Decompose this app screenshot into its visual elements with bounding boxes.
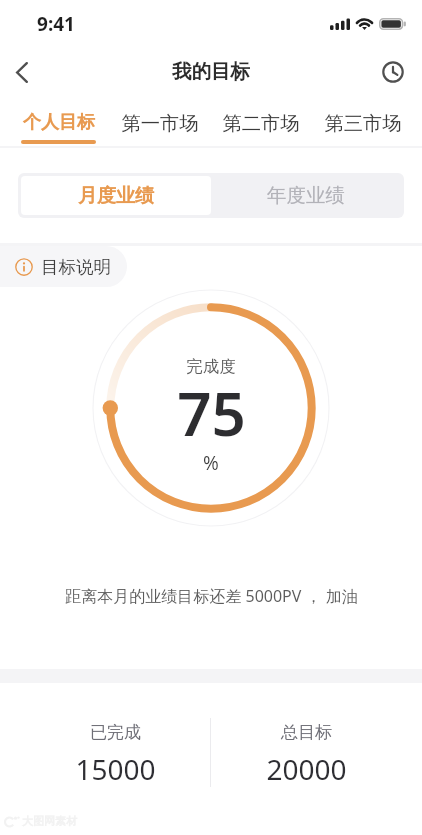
staticText: 年度业绩 [267,183,345,208]
button[interactable]: 目标说明 [0,246,127,287]
staticText: 75 [177,372,246,454]
button[interactable]: 第三市场 [312,99,414,146]
staticText: 月度业绩 [78,184,154,208]
staticText: 第一市场 [121,111,199,135]
button[interactable]: History [371,50,415,94]
staticText: % [203,450,219,476]
button[interactable]: 已完成 [20,722,211,788]
staticText: 个人目标 [23,111,95,134]
button[interactable]: 月度业绩 [21,176,211,215]
button[interactable]: 第一市场 [109,99,210,146]
staticText: 15000 [75,750,156,788]
staticText: 20000 [266,750,347,788]
staticText: 目标说明 [41,256,111,278]
staticText: 距离本月的业绩目标还差 5000PV ， 加油 [65,585,358,607]
staticText: 第二市场 [222,111,300,135]
button[interactable]: Back [0,48,46,96]
button[interactable]: 总目标 [211,722,402,788]
staticText: 总目标 [281,722,332,743]
staticText: 9:41 [37,11,75,37]
staticText: 大图网素材 [22,814,77,828]
staticText: 完成度 [186,356,236,377]
button[interactable]: 个人目标 [8,99,109,146]
staticText: 第三市场 [324,111,402,135]
button[interactable]: 年度业绩 [211,176,401,215]
staticText: 我的目标 [172,59,250,84]
staticText: 已完成 [90,722,141,743]
button[interactable]: 第二市场 [210,99,312,146]
